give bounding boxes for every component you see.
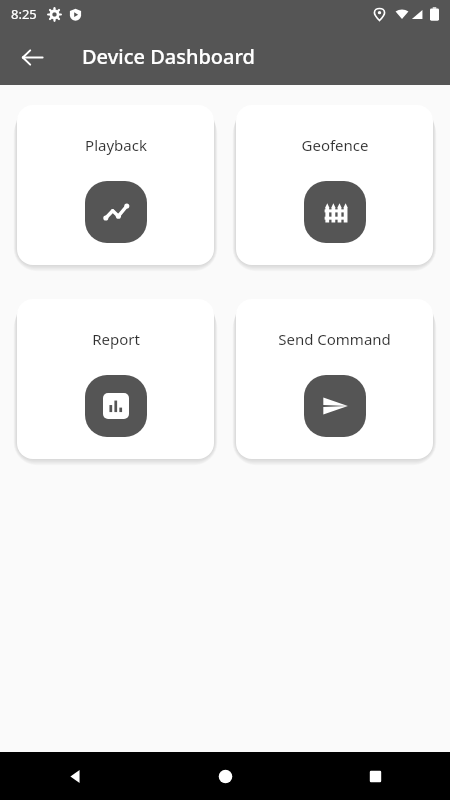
button[interactable]: Geofence [236,105,433,265]
button[interactable]: Recent apps [300,752,450,800]
button[interactable]: Back [10,35,54,79]
staticText: Send Command [278,329,391,349]
button[interactable]: Playback [17,105,214,265]
button[interactable]: Report [17,299,214,459]
staticText: Playback [85,135,147,155]
staticText: Report [92,329,140,349]
staticText: Geofence [301,135,369,155]
button[interactable]: Home [150,752,300,800]
button[interactable]: Back [0,752,150,800]
staticText: Device Dashboard [82,43,255,70]
staticText: 8:25 [11,5,37,23]
button[interactable]: Send Command [236,299,433,459]
